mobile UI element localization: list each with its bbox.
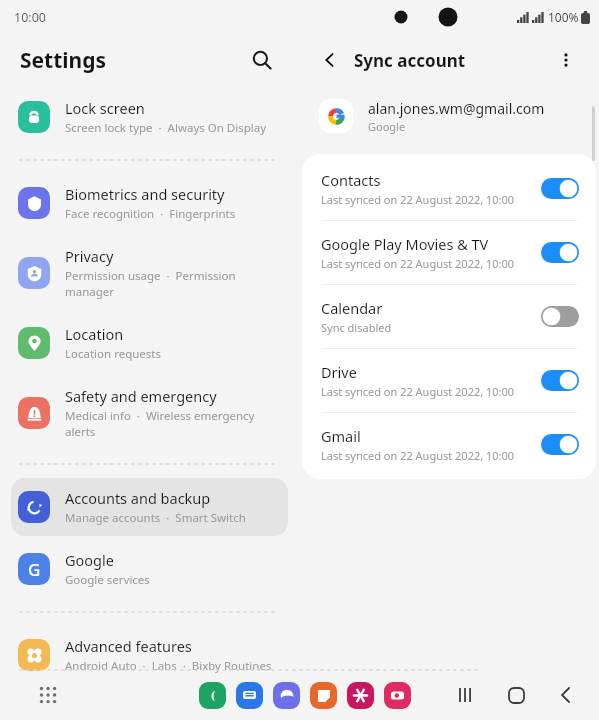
staticText: Medical info · Wireless emergency alerts [65,408,278,440]
button[interactable]: Safety and emergency [11,376,288,450]
button[interactable]: Drive [302,349,596,412]
button[interactable]: Back [551,680,581,710]
staticText: Permission usage · Permission manager [65,268,278,300]
button[interactable]: Notes [310,682,337,709]
button[interactable]: Advanced features [11,626,288,684]
button[interactable]: Contacts [302,157,596,220]
staticText: Privacy [65,246,114,266]
staticText: Location requests [65,346,161,362]
staticText: Sync account [354,49,466,72]
button[interactable]: Gmail [302,413,596,476]
button[interactable]: Internet [273,682,300,709]
staticText: G [28,558,41,581]
button[interactable]: Calendar [302,285,596,348]
staticText: Sync disabled [321,320,392,335]
staticText: Lock screen [65,98,145,118]
staticText: Location [65,324,124,344]
button[interactable]: G [11,540,288,598]
button[interactable]: Home [501,680,531,710]
staticText: Google [368,119,406,134]
staticText: Google Play Movies & TV [321,234,489,254]
button[interactable]: Back [315,45,345,75]
staticText: 10:00 [14,9,46,26]
button[interactable]: Phone [199,682,226,709]
button[interactable]: Location [11,314,288,372]
staticText: Google services [65,572,150,588]
staticText: alan.jones.wm@gmail.com [368,99,545,118]
staticText: Face recognition · Fingerprints [65,206,236,222]
staticText: Last synced on 22 August 2022, 10:00 [321,448,515,463]
staticText: Drive [321,362,357,382]
staticText: Screen lock type · Always On Display [65,120,267,136]
button[interactable]: Recents [451,680,481,710]
staticText: Contacts [321,170,381,190]
staticText: Safety and emergency [65,386,217,406]
staticText: Calendar [321,298,383,318]
button[interactable]: Biometrics and security [11,174,288,232]
staticText: Biometrics and security [65,184,225,204]
button[interactable]: Gallery [347,682,374,709]
staticText: Manage accounts · Smart Switch [65,510,246,526]
button[interactable]: alan.jones.wm@gmail.com [299,86,599,146]
button[interactable]: Messages [236,682,263,709]
button[interactable]: Privacy [11,236,288,310]
staticText: Gmail [321,426,361,446]
button[interactable]: On [541,242,579,263]
button[interactable]: On [541,178,579,199]
staticText: Advanced features [65,636,192,656]
button[interactable]: Lock screen [11,88,288,146]
button[interactable]: Camera [384,682,411,709]
button[interactable]: Accounts and backup [11,478,288,536]
staticText: Last synced on 22 August 2022, 10:00 [321,384,515,399]
staticText: Last synced on 22 August 2022, 10:00 [321,256,515,271]
staticText: Settings [20,46,107,75]
button[interactable]: Search [245,43,279,77]
button[interactable]: More options [551,45,581,75]
staticText: 100% [548,9,579,25]
staticText: Google [65,550,114,570]
staticText: Last synced on 22 August 2022, 10:00 [321,192,515,207]
button[interactable]: Off [541,306,579,327]
button[interactable]: On [541,434,579,455]
staticText: Accounts and backup [65,488,211,508]
button[interactable]: Google Play Movies & TV [302,221,596,284]
button[interactable]: Apps [32,679,64,711]
staticText: Android Auto · Labs · Bixby Routines [65,658,272,674]
button[interactable]: On [541,370,579,391]
